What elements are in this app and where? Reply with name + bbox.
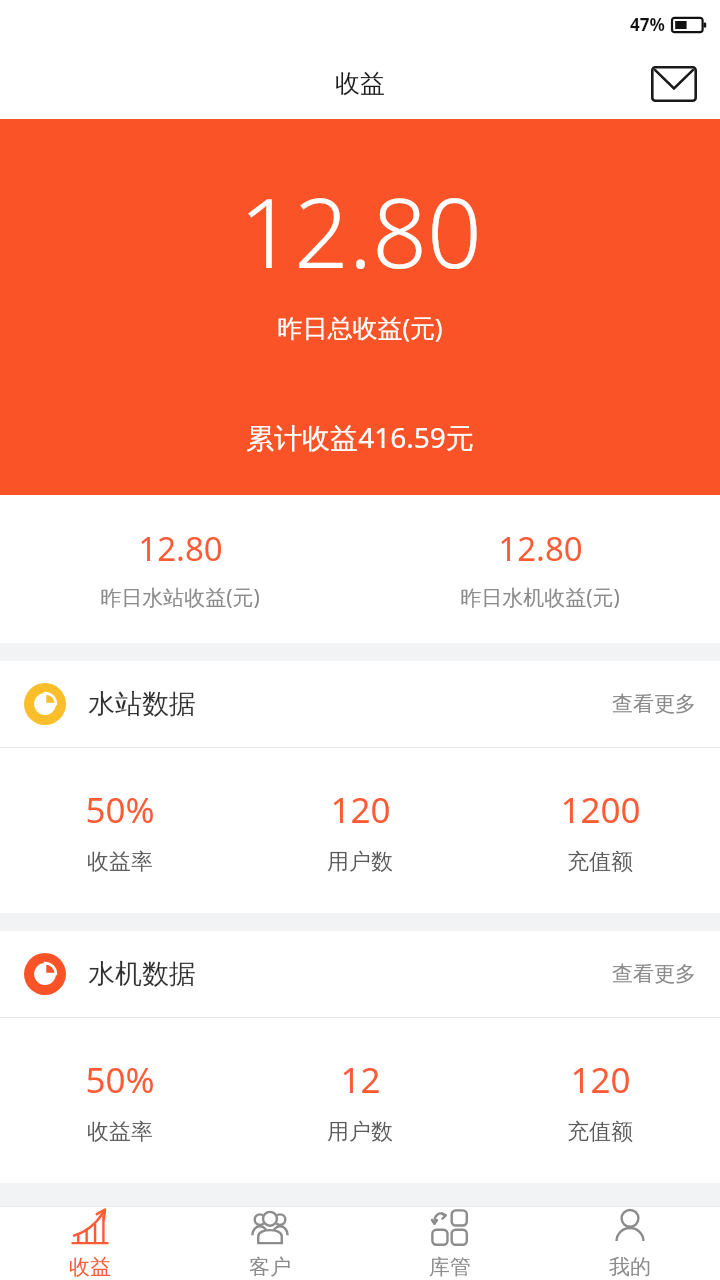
button[interactable]: 50% (0, 1018, 240, 1183)
button[interactable]: 客户 (180, 1207, 360, 1280)
staticText: 水机数据 (88, 957, 196, 991)
staticText: 昨日总收益(元) (277, 310, 443, 344)
staticText: 用户数 (327, 1118, 393, 1146)
staticText: 查看更多 (612, 691, 696, 717)
staticText: 我的 (609, 1254, 651, 1280)
button[interactable]: 库管 (360, 1207, 540, 1280)
staticText: 昨日水站收益(元) (100, 583, 260, 612)
staticText: 50% (85, 1056, 155, 1104)
staticText: 12 (340, 1056, 381, 1104)
staticText: 收益率 (87, 1118, 153, 1146)
staticText: 120 (330, 786, 391, 834)
button[interactable]: 12 (240, 1018, 480, 1183)
staticText: 昨日水机收益(元) (460, 583, 620, 612)
staticText: 充值额 (567, 1118, 633, 1146)
button[interactable]: 1200 (480, 748, 720, 913)
staticText: 查看更多 (612, 961, 696, 987)
staticText: 客户 (249, 1254, 291, 1280)
staticText: 用户数 (327, 848, 393, 876)
staticText: 12.80 (239, 165, 482, 296)
staticText: 50% (85, 786, 155, 834)
staticText: 120 (570, 1056, 631, 1104)
staticText: 12.80 (498, 526, 583, 571)
staticText: 累计收益416.59元 (246, 418, 474, 456)
staticText: 水站数据 (88, 687, 196, 721)
button[interactable]: 12.80 (360, 495, 720, 643)
button[interactable]: 50% (0, 748, 240, 913)
staticText: 充值额 (567, 848, 633, 876)
button[interactable]: 水站数据 (0, 661, 720, 747)
button[interactable]: 120 (480, 1018, 720, 1183)
staticText: 库管 (429, 1254, 471, 1280)
staticText: 收益 (335, 68, 385, 99)
staticText: 12.80 (138, 526, 223, 571)
button[interactable]: 12.80 (0, 495, 360, 643)
staticText: 1200 (560, 786, 641, 834)
button[interactable]: 120 (240, 748, 480, 913)
staticText: 收益 (69, 1254, 111, 1280)
button[interactable]: 消息 (648, 58, 700, 110)
button[interactable]: 我的 (540, 1207, 720, 1280)
button[interactable]: 水机数据 (0, 931, 720, 1017)
button[interactable]: 收益 (0, 1207, 180, 1280)
staticText: 收益率 (87, 848, 153, 876)
staticText: 47% (630, 13, 665, 36)
